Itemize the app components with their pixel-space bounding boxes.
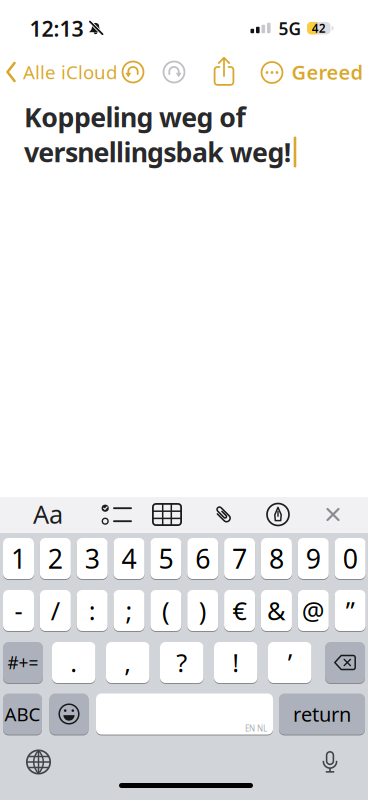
staticText: 1: [11, 541, 26, 576]
button[interactable]: !: [214, 642, 257, 683]
button[interactable]: @: [298, 590, 329, 631]
staticText: !: [232, 646, 239, 679]
staticText: Aa: [33, 497, 63, 531]
button[interactable]: More: [261, 62, 282, 83]
staticText: 3: [85, 541, 100, 576]
staticText: ,: [124, 646, 131, 679]
staticText: 5G: [278, 17, 301, 40]
staticText: 42: [312, 20, 326, 36]
button[interactable]: Checklist: [101, 504, 131, 525]
button[interactable]: 9: [298, 538, 329, 579]
staticText: ABC: [4, 702, 40, 726]
staticText: return: [293, 701, 351, 727]
staticText: ”: [346, 594, 355, 627]
button[interactable]: 4: [114, 538, 145, 579]
button[interactable]: Markup: [266, 503, 289, 526]
button[interactable]: ”: [335, 590, 366, 631]
button[interactable]: return: [279, 693, 365, 734]
staticText: ;: [126, 594, 133, 627]
staticText: 9: [306, 541, 321, 576]
button[interactable]: ,: [106, 642, 149, 683]
button[interactable]: 1: [3, 538, 34, 579]
staticText: /: [51, 594, 60, 627]
button[interactable]: 2: [40, 538, 71, 579]
staticText: &: [267, 594, 286, 627]
button[interactable]: Gereed: [291, 59, 363, 85]
staticText: EN NL: [245, 723, 267, 734]
button[interactable]: Next keyboard: [26, 749, 51, 774]
button[interactable]: 5: [150, 538, 181, 579]
staticText: -: [14, 594, 22, 627]
button[interactable]: 6: [187, 538, 218, 579]
staticText: 12:13: [29, 14, 83, 43]
staticText: ): [199, 594, 207, 627]
button[interactable]: Emoji: [49, 693, 88, 734]
button[interactable]: Delete: [325, 642, 365, 683]
button[interactable]: -: [3, 590, 34, 631]
button[interactable]: Dictate: [322, 751, 338, 773]
button[interactable]: Table: [152, 503, 182, 526]
button[interactable]: Share: [214, 56, 234, 85]
button[interactable]: &: [261, 590, 292, 631]
button[interactable]: /: [40, 590, 71, 631]
button[interactable]: Alle iCloud: [5, 59, 135, 85]
button[interactable]: 3: [77, 538, 108, 579]
button[interactable]: Close: [325, 507, 340, 522]
button[interactable]: :: [77, 590, 108, 631]
staticText: Alle iCloud: [23, 60, 117, 84]
staticText: 6: [195, 541, 210, 576]
button[interactable]: (: [150, 590, 181, 631]
staticText: 0: [343, 541, 358, 576]
staticText: :: [89, 594, 96, 627]
button[interactable]: €: [224, 590, 255, 631]
staticText: ’: [288, 646, 292, 679]
button[interactable]: 0: [335, 538, 366, 579]
button[interactable]: Redo: [163, 61, 184, 82]
staticText: Gereed: [291, 59, 363, 85]
staticText: 4: [122, 541, 137, 576]
staticText: 7: [232, 541, 247, 576]
staticText: ?: [176, 646, 187, 679]
staticText: (: [162, 594, 170, 627]
button[interactable]: Format: [33, 497, 63, 531]
staticText: 8: [269, 541, 284, 576]
button[interactable]: 7: [224, 538, 255, 579]
button[interactable]: #+=: [3, 642, 43, 683]
staticText: #+=: [7, 651, 38, 674]
button[interactable]: Attach: [216, 504, 227, 525]
staticText: €: [233, 594, 247, 627]
button[interactable]: .: [52, 642, 95, 683]
button[interactable]: ;: [114, 590, 145, 631]
button[interactable]: Space: [96, 693, 273, 734]
button[interactable]: ABC: [3, 693, 42, 734]
staticText: Koppeling weg of: [24, 99, 245, 135]
staticText: versnellingsbak weg!: [24, 134, 292, 170]
staticText: @: [302, 594, 325, 627]
staticText: .: [70, 646, 77, 679]
button[interactable]: ): [187, 590, 218, 631]
staticText: 5: [158, 541, 173, 576]
button[interactable]: ’: [268, 642, 311, 683]
button[interactable]: 8: [261, 538, 292, 579]
button[interactable]: ?: [160, 642, 203, 683]
button[interactable]: Undo: [122, 61, 143, 82]
staticText: 2: [48, 541, 63, 576]
